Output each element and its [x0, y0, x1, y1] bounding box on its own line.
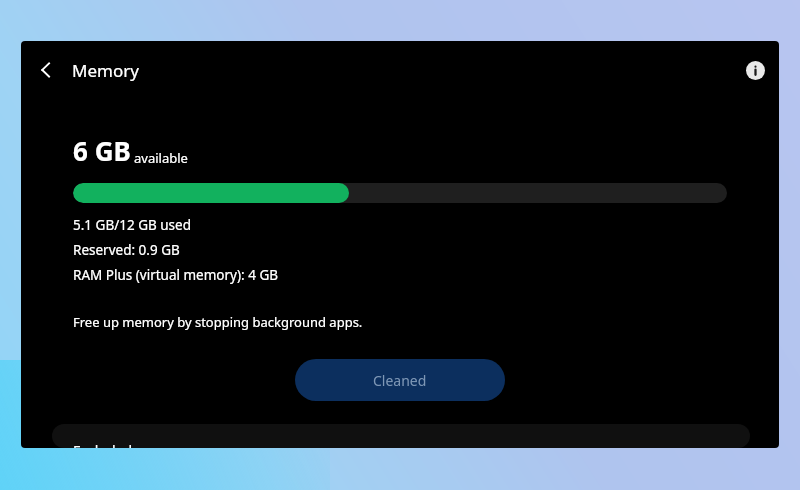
staticText: Reserved: 0.9 GB: [73, 241, 180, 259]
button[interactable]: Information: [740, 55, 770, 85]
staticText: RAM Plus (virtual memory): 4 GB: [73, 266, 278, 284]
other: Back: [33, 57, 59, 83]
button[interactable]: Excluded apps: [52, 424, 750, 448]
staticText: available: [134, 149, 188, 167]
button[interactable]: Cleaned: [295, 359, 505, 401]
staticText: 5.1 GB/12 GB used: [73, 216, 191, 234]
staticText: Excluded apps: [73, 441, 168, 448]
staticText: Memory: [72, 59, 139, 82]
button[interactable]: Back: [21, 51, 149, 89]
staticText: Cleaned: [373, 371, 427, 390]
staticText: Free up memory by stopping background ap…: [73, 313, 363, 331]
staticText: 6 GB: [73, 133, 131, 168]
